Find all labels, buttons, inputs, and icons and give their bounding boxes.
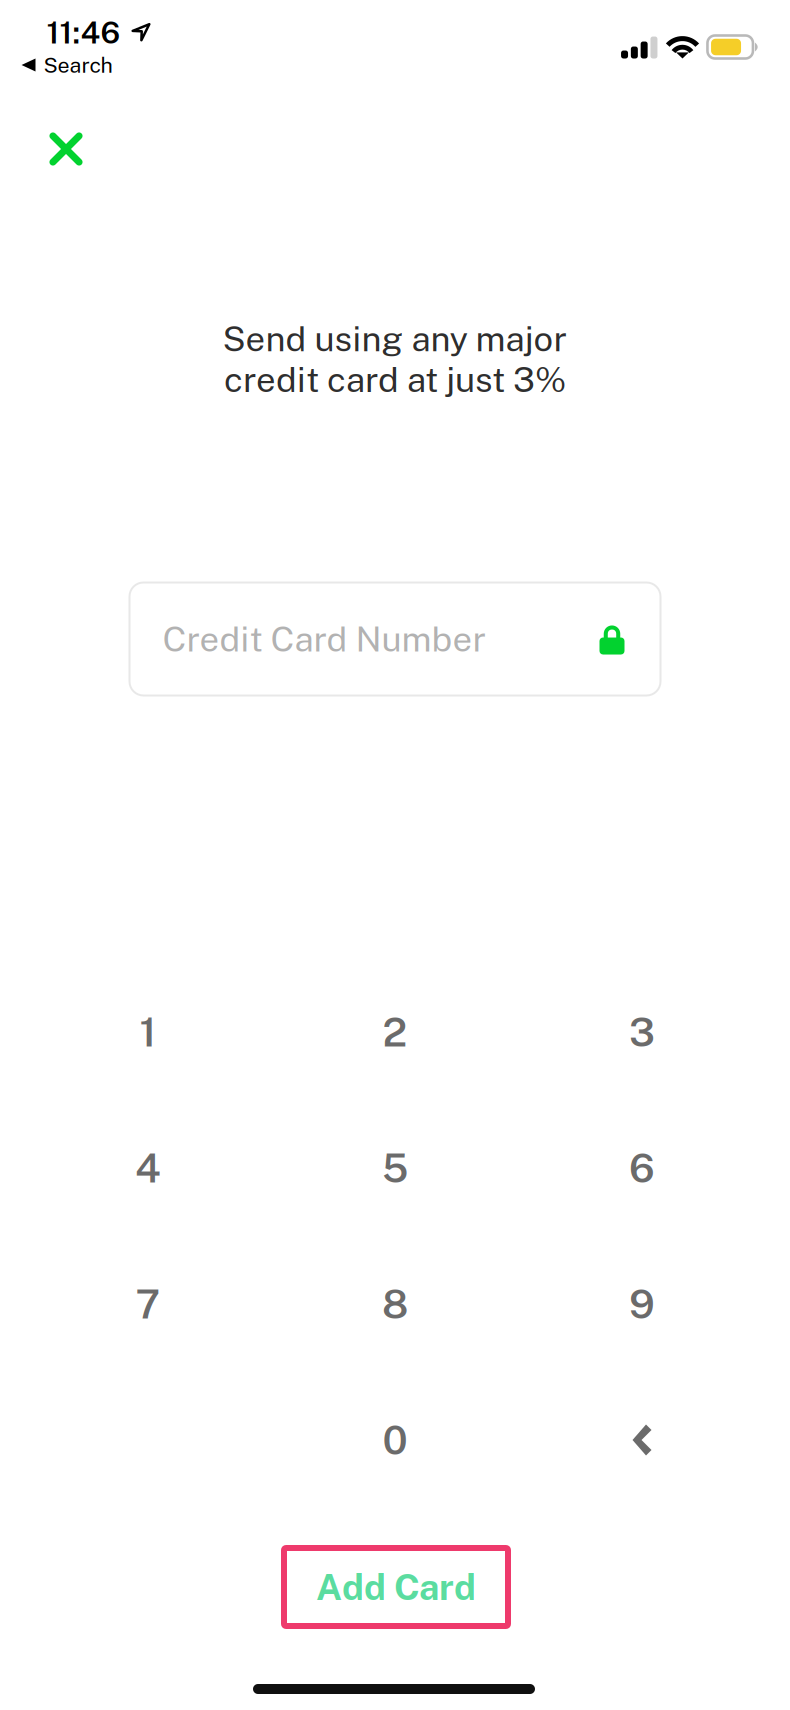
staticText: 9 (629, 1280, 655, 1327)
staticText: 4 (135, 1144, 161, 1191)
staticText: credit card at just 3% (224, 359, 566, 400)
staticText: 6 (629, 1144, 655, 1191)
button[interactable]: 4 (24, 1100, 271, 1236)
button[interactable]: Search (9, 43, 124, 87)
staticText: 7 (135, 1280, 160, 1327)
staticText: Search (43, 52, 112, 78)
staticText: 8 (382, 1280, 408, 1327)
button[interactable]: 3 (518, 964, 765, 1100)
staticText: 3 (629, 1008, 655, 1055)
button[interactable]: 6 (518, 1100, 765, 1236)
staticText: 2 (382, 1008, 407, 1055)
staticText: Send using any major (222, 318, 567, 359)
button[interactable]: 0 (271, 1372, 518, 1508)
staticText: 11:46 (46, 14, 120, 50)
button[interactable]: 8 (271, 1236, 518, 1372)
staticText: Credit Card Number (162, 619, 486, 659)
button[interactable]: 1 (24, 964, 271, 1100)
button[interactable]: Add Card (284, 1548, 508, 1626)
button[interactable]: Delete (518, 1372, 765, 1508)
button[interactable]: 2 (271, 964, 518, 1100)
staticText: Add Card (316, 1566, 476, 1608)
button[interactable]: Close (22, 105, 110, 193)
button[interactable]: Credit Card Number (129, 582, 660, 695)
button[interactable]: 5 (271, 1100, 518, 1236)
button[interactable]: 7 (24, 1236, 271, 1372)
staticText: 5 (382, 1144, 408, 1191)
button[interactable]: 9 (518, 1236, 765, 1372)
staticText: 1 (139, 1008, 156, 1055)
staticText: 0 (382, 1416, 407, 1463)
